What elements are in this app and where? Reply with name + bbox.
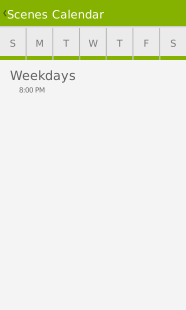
button[interactable]: S	[160, 28, 186, 60]
staticText: F	[143, 38, 149, 49]
staticText: T	[117, 38, 123, 49]
staticText: 8:00 PM	[19, 86, 45, 94]
staticText: Scenes Calendar	[7, 8, 104, 21]
staticText: S	[10, 38, 16, 49]
staticText: M	[36, 38, 44, 49]
staticText: Weekdays	[10, 68, 76, 83]
staticText: W	[88, 38, 97, 49]
button[interactable]: Back	[0, 0, 7, 26]
button[interactable]: F	[134, 28, 159, 60]
button[interactable]: M	[27, 28, 52, 60]
button[interactable]: T	[107, 28, 133, 60]
staticText: T	[63, 38, 69, 49]
button[interactable]: W	[80, 28, 106, 60]
button[interactable]: T	[53, 28, 79, 60]
staticText: S	[170, 38, 176, 49]
button[interactable]: S	[0, 28, 26, 60]
button[interactable]: Weekdays	[0, 60, 186, 102]
